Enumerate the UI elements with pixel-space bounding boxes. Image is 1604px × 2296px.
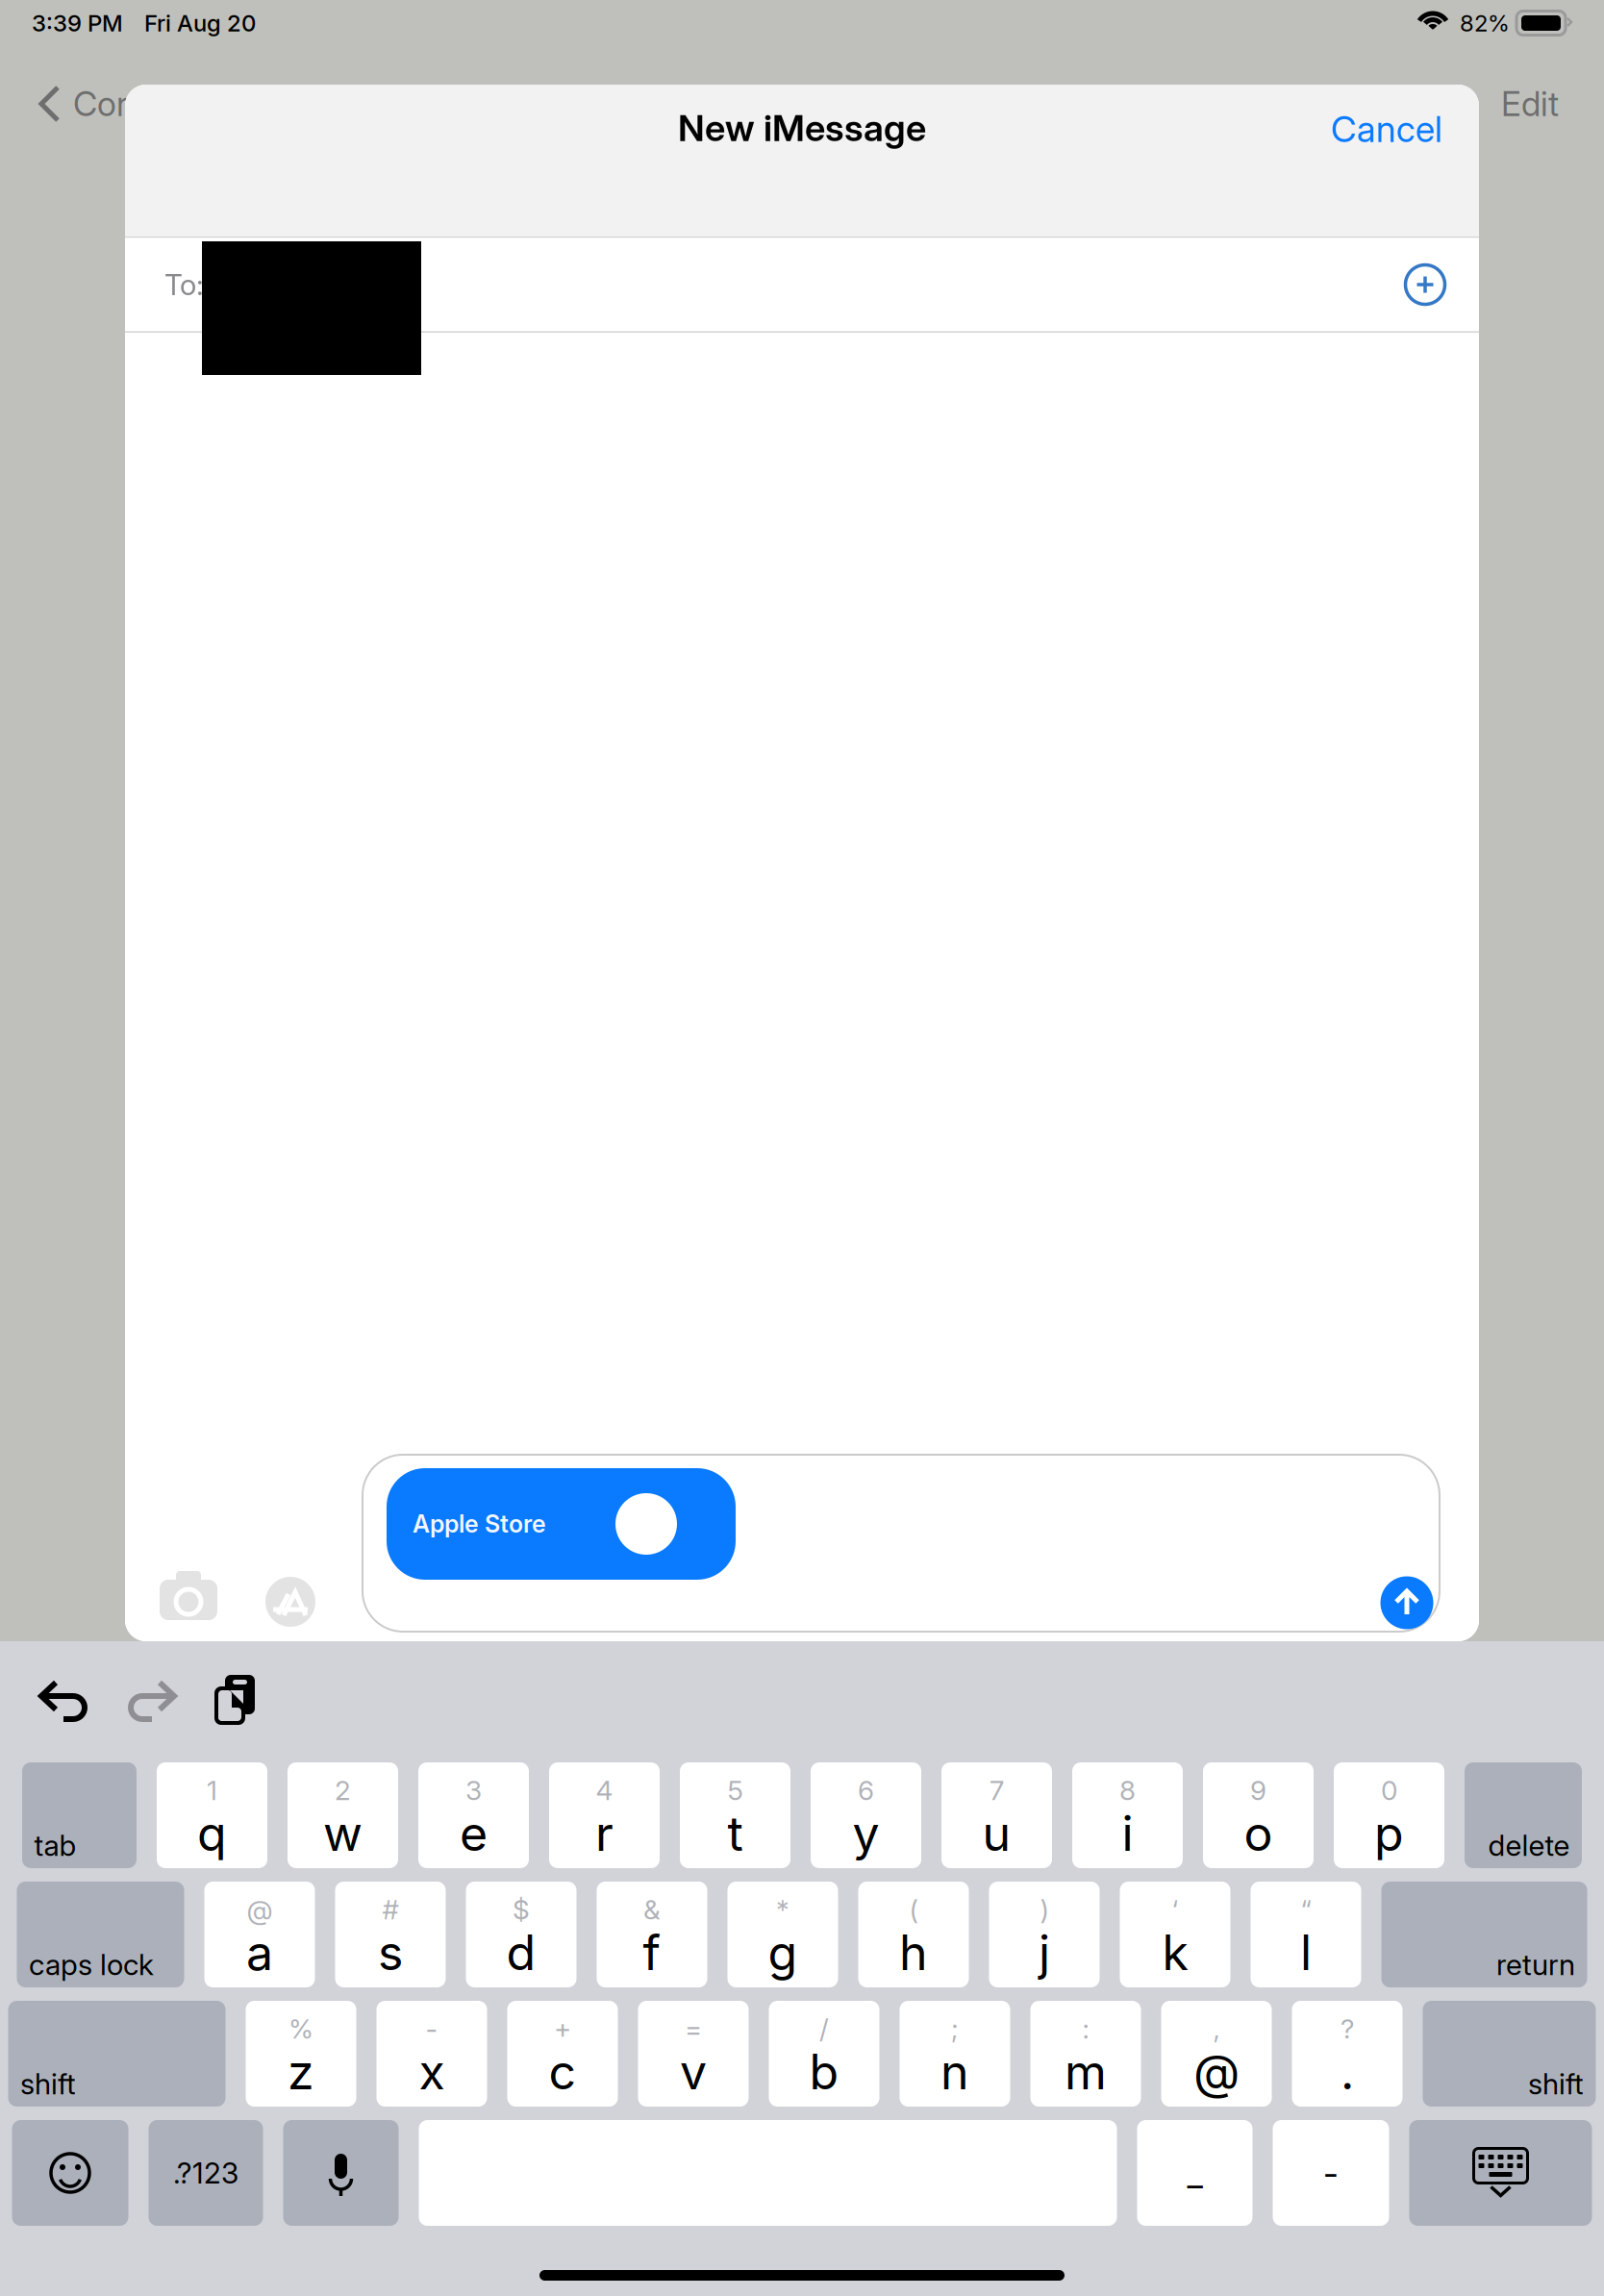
- staticText: i: [1122, 1804, 1133, 1862]
- staticText: ;: [951, 2012, 959, 2045]
- staticText: 0: [1381, 1774, 1397, 1807]
- button[interactable]: 5: [680, 1762, 790, 1868]
- staticText: r: [595, 1804, 614, 1862]
- button[interactable]: :: [1030, 2001, 1141, 2107]
- button[interactable]: *: [727, 1882, 838, 1987]
- staticText: .?123: [173, 2156, 238, 2190]
- button[interactable]: Redo: [108, 1668, 194, 1735]
- button[interactable]: Hide Keyboard: [1409, 2120, 1592, 2226]
- button[interactable]: 0: [1334, 1762, 1444, 1868]
- button[interactable]: Undo: [21, 1668, 108, 1735]
- button[interactable]: tab: [22, 1762, 137, 1868]
- staticText: Contacts: [73, 83, 210, 124]
- button[interactable]: “: [1251, 1882, 1361, 1987]
- button[interactable]: .?123: [149, 2120, 263, 2226]
- button[interactable]: Cancel: [1314, 96, 1460, 162]
- staticText: ,: [1213, 2012, 1220, 2045]
- button[interactable]: =: [638, 2001, 749, 2107]
- button[interactable]: 8: [1072, 1762, 1183, 1868]
- staticText: ): [1040, 1893, 1049, 1926]
- staticText: h: [899, 1923, 928, 1982]
- button[interactable]: Paste: [194, 1668, 281, 1735]
- staticText: 3: [465, 1774, 482, 1807]
- staticText: :: [1082, 2012, 1089, 2045]
- staticText: Cancel: [1331, 108, 1442, 151]
- button[interactable]: 3: [418, 1762, 529, 1868]
- staticText: l: [1300, 1923, 1312, 1982]
- staticText: _: [1187, 2152, 1203, 2194]
- button[interactable]: caps lock: [17, 1882, 184, 1987]
- staticText: w: [323, 1804, 363, 1862]
- button[interactable]: 7: [941, 1762, 1052, 1868]
- staticText: 8: [1119, 1774, 1136, 1807]
- staticText: 4: [596, 1774, 613, 1807]
- button[interactable]: Emoji: [12, 2120, 128, 2226]
- button[interactable]: Camera: [159, 1574, 218, 1628]
- button[interactable]: [419, 2120, 1117, 2226]
- button[interactable]: @: [204, 1882, 315, 1987]
- staticText: 2: [335, 1774, 351, 1807]
- staticText: @: [1193, 2043, 1240, 2101]
- button[interactable]: shift: [8, 2001, 226, 2107]
- button[interactable]: delete: [1465, 1762, 1582, 1868]
- staticText: tab: [34, 1828, 76, 1863]
- staticText: n: [940, 2043, 969, 2101]
- button[interactable]: 9: [1203, 1762, 1314, 1868]
- staticText: j: [1039, 1923, 1050, 1982]
- button[interactable]: 2: [288, 1762, 398, 1868]
- button[interactable]: 6: [811, 1762, 921, 1868]
- staticText: x: [419, 2043, 445, 2101]
- button[interactable]: Send: [1380, 1576, 1434, 1630]
- button[interactable]: App Store: [264, 1576, 316, 1628]
- button[interactable]: ;: [900, 2001, 1010, 2107]
- staticText: -: [426, 2012, 438, 2045]
- staticText: -: [1323, 2152, 1339, 2194]
- button[interactable]: -: [1273, 2120, 1389, 2226]
- button[interactable]: +: [507, 2001, 618, 2107]
- staticText: return: [1496, 1947, 1575, 1982]
- staticText: f: [643, 1923, 661, 1982]
- button[interactable]: /: [769, 2001, 879, 2107]
- staticText: z: [288, 2043, 314, 2101]
- staticText: g: [768, 1923, 798, 1982]
- staticText: 1: [207, 1774, 217, 1807]
- button[interactable]: shift: [1423, 2001, 1596, 2107]
- button[interactable]: %: [246, 2001, 356, 2107]
- staticText: b: [809, 2043, 839, 2101]
- staticText: &: [643, 1893, 661, 1926]
- staticText: o: [1244, 1804, 1273, 1862]
- staticText: q: [197, 1804, 227, 1862]
- button[interactable]: (: [858, 1882, 969, 1987]
- button[interactable]: &: [597, 1882, 707, 1987]
- staticText: a: [246, 1923, 273, 1982]
- staticText: delete: [1488, 1828, 1570, 1863]
- button[interactable]: _: [1137, 2120, 1253, 2226]
- staticText: c: [549, 2043, 576, 2101]
- button[interactable]: Add contact: [1404, 263, 1446, 306]
- button[interactable]: #: [335, 1882, 446, 1987]
- button[interactable]: -: [376, 2001, 487, 2107]
- staticText: $: [513, 1893, 530, 1926]
- button[interactable]: ?: [1292, 2001, 1403, 2107]
- staticText: “: [1301, 1893, 1311, 1926]
- staticText: t: [727, 1804, 743, 1862]
- button[interactable]: 4: [549, 1762, 660, 1868]
- button[interactable]: return: [1381, 1882, 1587, 1987]
- staticText: e: [460, 1804, 488, 1862]
- staticText: Fri Aug 20: [144, 9, 256, 37]
- button[interactable]: Dictate: [283, 2120, 399, 2226]
- staticText: s: [378, 1923, 403, 1982]
- staticText: ‘: [1172, 1893, 1178, 1926]
- button[interactable]: ‘: [1120, 1882, 1230, 1987]
- staticText: ?: [1341, 2012, 1354, 2045]
- button[interactable]: $: [466, 1882, 576, 1987]
- button[interactable]: ): [989, 1882, 1100, 1987]
- staticText: k: [1162, 1923, 1188, 1982]
- staticText: shift: [20, 2066, 76, 2101]
- button[interactable]: 1: [157, 1762, 267, 1868]
- button[interactable]: ,: [1161, 2001, 1272, 2107]
- staticText: p: [1374, 1804, 1404, 1862]
- staticText: .: [1341, 2043, 1354, 2101]
- staticText: Edit: [1501, 83, 1559, 124]
- staticText: 82%: [1460, 9, 1510, 37]
